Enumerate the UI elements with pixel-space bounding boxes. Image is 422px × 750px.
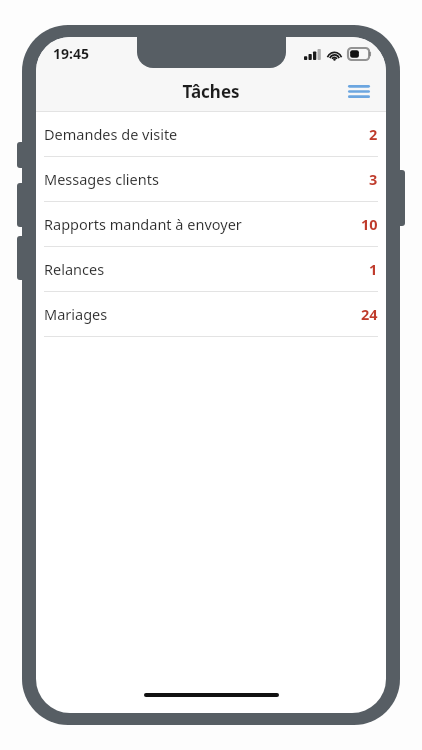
staticText: Messages clients (44, 169, 369, 189)
staticText: Tâches (182, 80, 240, 103)
staticText: 24 (361, 304, 378, 324)
button[interactable]: Messages clients (36, 157, 386, 201)
staticText: 1 (369, 259, 378, 279)
staticText: 10 (361, 214, 378, 234)
staticText: Demandes de visite (44, 124, 369, 144)
button[interactable]: Rapports mandant à envoyer (36, 202, 386, 246)
button[interactable]: Demandes de visite (36, 112, 386, 156)
staticText: 3 (369, 169, 378, 189)
staticText: Relances (44, 259, 369, 279)
staticText: 2 (369, 124, 378, 144)
button[interactable]: Menu (342, 74, 376, 108)
button[interactable]: Relances (36, 247, 386, 291)
staticText: Rapports mandant à envoyer (44, 214, 361, 234)
staticText: 19:45 (53, 44, 89, 63)
button[interactable]: Mariages (36, 292, 386, 336)
staticText: Mariages (44, 304, 361, 324)
